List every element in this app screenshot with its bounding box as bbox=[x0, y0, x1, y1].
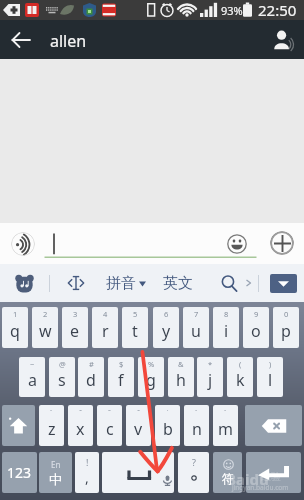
staticText: jingyan.baidu.com bbox=[232, 483, 289, 492]
staticText: j bbox=[208, 369, 213, 391]
staticText: ˋ bbox=[224, 407, 227, 417]
staticText: Baidu bbox=[226, 469, 269, 489]
staticText: v bbox=[134, 418, 143, 440]
staticText: f bbox=[118, 369, 124, 391]
button[interactable]: v bbox=[126, 405, 151, 446]
staticText: 9 bbox=[254, 309, 259, 319]
button[interactable]: Input method settings bbox=[13, 272, 36, 295]
button[interactable]: Voice message bbox=[11, 232, 35, 256]
button[interactable]: y bbox=[153, 307, 179, 348]
staticText: @ bbox=[59, 359, 66, 369]
staticText: # bbox=[89, 359, 94, 369]
staticText: h bbox=[176, 369, 186, 391]
button[interactable]: q bbox=[2, 307, 28, 348]
button[interactable] bbox=[44, 227, 214, 257]
staticText: l bbox=[268, 369, 273, 391]
button[interactable]: Space bbox=[102, 452, 174, 493]
staticText: e bbox=[70, 320, 80, 342]
staticText: w bbox=[39, 320, 52, 342]
button[interactable]: h bbox=[168, 357, 194, 397]
button[interactable]: x bbox=[68, 405, 93, 446]
button[interactable]: p bbox=[273, 307, 299, 348]
staticText: ˙ bbox=[167, 407, 169, 417]
staticText: t bbox=[132, 320, 138, 342]
staticText: % bbox=[148, 359, 155, 369]
staticText: En bbox=[51, 459, 61, 470]
button[interactable]: a bbox=[19, 357, 45, 397]
staticText: g bbox=[146, 369, 156, 391]
staticText: i bbox=[224, 320, 229, 342]
staticText: 4 bbox=[103, 309, 108, 319]
button[interactable]: e bbox=[62, 307, 88, 348]
staticText: ˇ bbox=[79, 407, 83, 417]
button[interactable]: t bbox=[122, 307, 148, 348]
staticText: y bbox=[162, 320, 171, 342]
button[interactable]: k bbox=[227, 357, 253, 397]
staticText: u bbox=[191, 320, 201, 342]
staticText: 拼音 bbox=[106, 274, 136, 293]
button[interactable]: u bbox=[183, 307, 209, 348]
button[interactable]: 英文 bbox=[163, 264, 193, 302]
button[interactable]: More options bbox=[270, 231, 294, 255]
button[interactable]: Shift bbox=[2, 405, 35, 446]
staticText: d bbox=[86, 369, 96, 391]
button[interactable]: f bbox=[108, 357, 134, 397]
button[interactable]: g bbox=[138, 357, 164, 397]
staticText: ˇ bbox=[137, 407, 141, 417]
button[interactable]: 123 bbox=[2, 452, 37, 493]
button[interactable]: n bbox=[184, 405, 209, 446]
staticText: ˋ bbox=[195, 407, 198, 417]
staticText: a bbox=[28, 369, 37, 391]
button[interactable]: Move cursor bbox=[62, 269, 90, 297]
staticText: $ bbox=[119, 359, 124, 369]
button[interactable]: l bbox=[257, 357, 283, 397]
button[interactable]: i bbox=[213, 307, 239, 348]
staticText: ) bbox=[269, 359, 272, 369]
staticText: n bbox=[192, 418, 202, 440]
button[interactable]: Hide keyboard bbox=[270, 274, 297, 293]
staticText: s bbox=[58, 369, 66, 391]
button[interactable]: w bbox=[32, 307, 58, 348]
staticText: * bbox=[208, 359, 213, 369]
staticText: ? bbox=[192, 456, 196, 468]
staticText: 6 bbox=[164, 309, 169, 319]
staticText: b bbox=[163, 418, 173, 440]
button[interactable]: Enter bbox=[246, 452, 301, 493]
staticText: 经验 bbox=[261, 470, 281, 483]
staticText: & bbox=[178, 359, 184, 369]
staticText: 22:50 bbox=[258, 0, 297, 20]
button[interactable]: Back bbox=[0, 20, 42, 59]
staticText: 中 bbox=[49, 471, 62, 487]
button[interactable]: ! bbox=[75, 452, 99, 493]
staticText: 7 bbox=[194, 309, 199, 319]
button[interactable]: Voice input bbox=[162, 475, 173, 486]
staticText: 2 bbox=[43, 309, 48, 319]
button[interactable]: r bbox=[92, 307, 118, 348]
button[interactable]: o bbox=[243, 307, 269, 348]
button[interactable]: z bbox=[39, 405, 64, 446]
staticText: r bbox=[102, 320, 109, 342]
staticText: c bbox=[106, 418, 114, 440]
button[interactable]: Backspace bbox=[245, 405, 302, 446]
staticText: o bbox=[251, 320, 261, 342]
button[interactable]: d bbox=[78, 357, 104, 397]
button[interactable]: Search bbox=[214, 268, 244, 298]
button[interactable]: j bbox=[197, 357, 223, 397]
button[interactable]: 符 bbox=[213, 452, 242, 493]
button[interactable]: 拼音 bbox=[106, 264, 146, 302]
button[interactable]: Emoji bbox=[226, 233, 248, 255]
button[interactable]: En bbox=[39, 452, 72, 493]
staticText: , bbox=[85, 468, 89, 487]
staticText: 123 bbox=[7, 463, 32, 482]
button[interactable]: m bbox=[213, 405, 238, 446]
staticText: 93% bbox=[221, 3, 243, 18]
button[interactable]: ? bbox=[178, 452, 209, 493]
staticText: x bbox=[76, 418, 85, 440]
button[interactable]: s bbox=[49, 357, 75, 397]
button[interactable]: Contact profile bbox=[260, 20, 304, 59]
staticText: p bbox=[281, 320, 291, 342]
button[interactable]: c bbox=[97, 405, 122, 446]
staticText: 0 bbox=[284, 309, 289, 319]
button[interactable]: b bbox=[155, 405, 180, 446]
staticText: 英文 bbox=[163, 274, 193, 293]
